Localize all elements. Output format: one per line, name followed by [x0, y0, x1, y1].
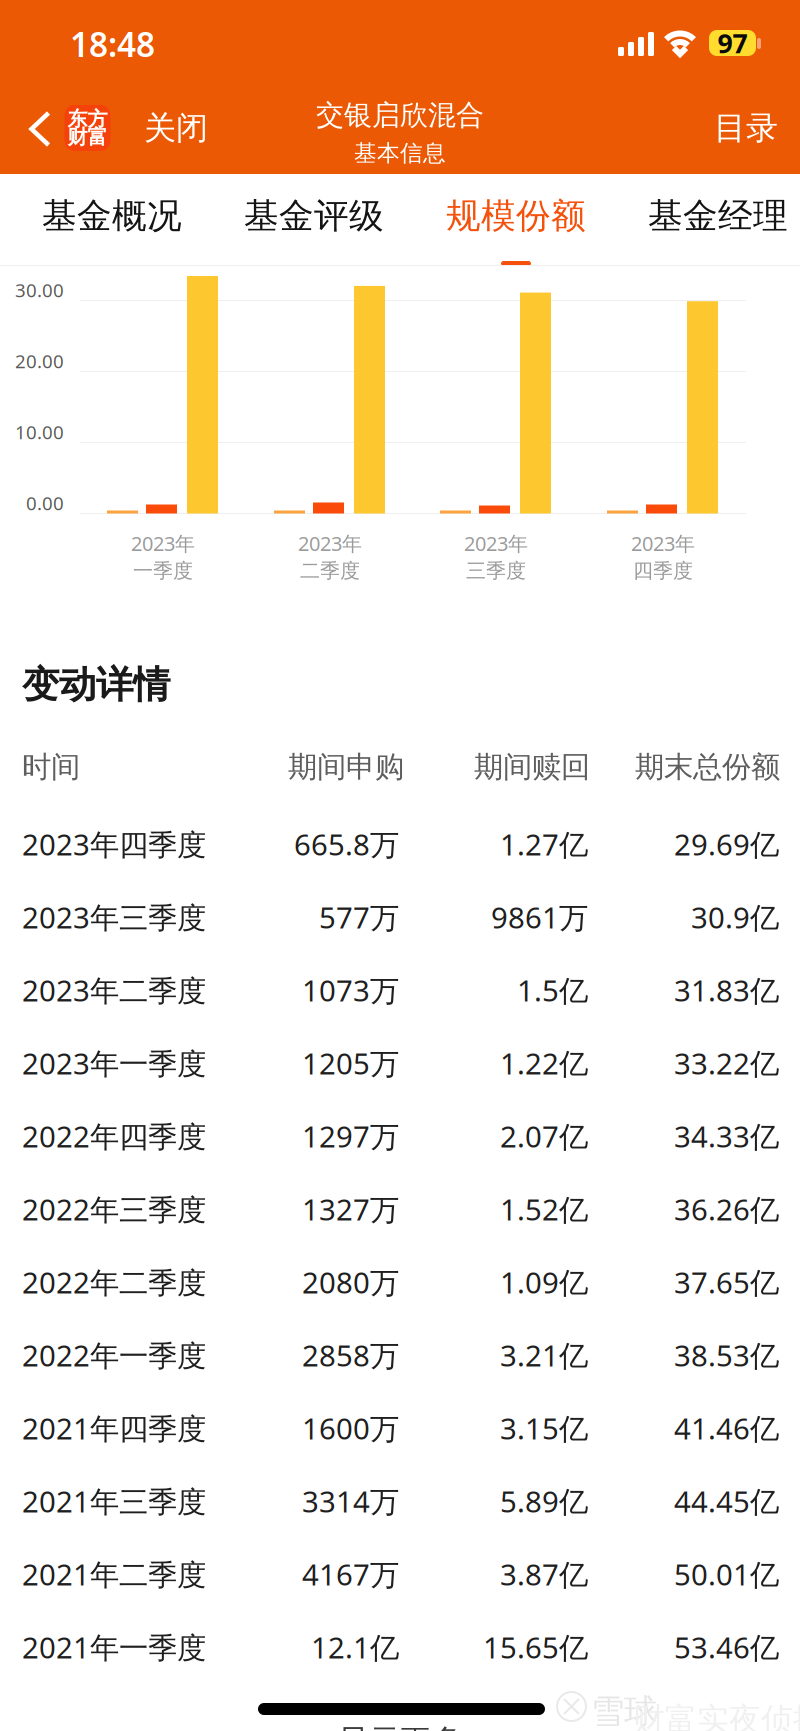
staticText: 2023年 [131, 530, 195, 557]
staticText: 变动详情 [22, 662, 170, 708]
staticText: 0.00 [26, 491, 64, 515]
staticText: 4167万 [302, 1554, 399, 1593]
staticText: 规模份额 [446, 195, 586, 237]
staticText: 2022年二季度 [22, 1262, 206, 1301]
staticText: 目录 [714, 108, 778, 148]
staticText: 四季度 [633, 559, 693, 583]
staticText: 53.46亿 [674, 1627, 779, 1666]
staticText: 显示更多 [338, 1722, 462, 1731]
staticText: 2023年 [464, 530, 528, 557]
button[interactable]: 基金经理 [627, 174, 800, 266]
staticText: 2021年二季度 [22, 1554, 206, 1593]
staticText: 36.26亿 [674, 1189, 779, 1228]
staticText: 1073万 [302, 970, 399, 1009]
staticText: 基金概况 [42, 195, 182, 237]
staticText: 交银启欣混合 [316, 98, 484, 132]
staticText: 2023年三季度 [22, 897, 206, 936]
staticText: 18:48 [70, 22, 155, 66]
staticText: 2858万 [302, 1335, 399, 1374]
staticText: 41.46亿 [674, 1408, 779, 1447]
staticText: 30.9亿 [691, 897, 779, 936]
staticText: 基金经理 [648, 195, 788, 237]
staticText: 东方 [67, 107, 107, 131]
staticText: 37.65亿 [674, 1262, 779, 1301]
staticText: 基金评级 [244, 195, 384, 237]
staticText: 期末总份额 [635, 749, 780, 785]
staticText: 1.09亿 [500, 1262, 588, 1301]
staticText: 15.65亿 [483, 1627, 588, 1666]
button[interactable]: 显示更多 [0, 1721, 800, 1731]
staticText: 1.27亿 [500, 824, 588, 863]
staticText: 时间 [22, 749, 80, 785]
staticText: 3.15亿 [500, 1408, 588, 1447]
staticText: 2023年 [631, 530, 695, 557]
staticText: 44.45亿 [674, 1481, 779, 1520]
staticText: 3.21亿 [500, 1335, 588, 1374]
staticText: 期间申购 [288, 749, 404, 785]
staticText: 财富实夜侦探07 [633, 1697, 800, 1731]
staticText: 1600万 [302, 1408, 399, 1447]
staticText: 1297万 [302, 1116, 399, 1155]
staticText: 雪球 [591, 1691, 657, 1731]
staticText: 97 [717, 25, 747, 61]
staticText: 1205万 [302, 1043, 399, 1082]
button[interactable]: 关闭 [133, 102, 219, 154]
staticText: 期间赎回 [474, 749, 590, 785]
button[interactable]: 规模份额 [425, 174, 607, 266]
staticText: 5.89亿 [500, 1481, 588, 1520]
staticText: 1.52亿 [500, 1189, 588, 1228]
staticText: 577万 [319, 897, 399, 936]
staticText: 20.00 [15, 349, 64, 373]
staticText: 基本信息 [354, 139, 446, 167]
staticText: 38.53亿 [674, 1335, 779, 1374]
staticText: 12.1亿 [311, 1627, 399, 1666]
staticText: 29.69亿 [674, 824, 779, 863]
button[interactable]: 返回 [10, 112, 95, 152]
staticText: 2021年一季度 [22, 1627, 206, 1666]
staticText: 31.83亿 [674, 970, 779, 1009]
staticText: 2022年一季度 [22, 1335, 206, 1374]
staticText: 3.87亿 [500, 1554, 588, 1593]
staticText: 1327万 [302, 1189, 399, 1228]
staticText: 2022年四季度 [22, 1116, 206, 1155]
staticText: 30.00 [15, 278, 64, 302]
staticText: 1.22亿 [500, 1043, 588, 1082]
staticText: 2022年三季度 [22, 1189, 206, 1228]
staticText: 3314万 [302, 1481, 399, 1520]
staticText: 2023年二季度 [22, 970, 206, 1009]
staticText: 33.22亿 [674, 1043, 779, 1082]
staticText: 10.00 [15, 420, 64, 444]
staticText: 2080万 [302, 1262, 399, 1301]
staticText: 2.07亿 [500, 1116, 588, 1155]
staticText: 财富 [67, 125, 107, 149]
staticText: 2023年一季度 [22, 1043, 206, 1082]
staticText: 2023年 [298, 530, 362, 557]
staticText: 三季度 [466, 559, 526, 583]
staticText: 665.8万 [294, 824, 399, 863]
staticText: 一季度 [133, 559, 193, 583]
button[interactable]: 目录 [703, 102, 789, 154]
staticText: 9861万 [491, 897, 588, 936]
staticText: 2021年三季度 [22, 1481, 206, 1520]
staticText: 2021年四季度 [22, 1408, 206, 1447]
button[interactable]: 基金评级 [223, 174, 405, 266]
staticText: 1.5亿 [517, 970, 588, 1009]
staticText: 关闭 [144, 108, 208, 148]
staticText: 2023年四季度 [22, 824, 206, 863]
button[interactable]: 基金概况 [21, 174, 203, 266]
staticText: 50.01亿 [674, 1554, 779, 1593]
staticText: 34.33亿 [674, 1116, 779, 1155]
staticText: 二季度 [300, 559, 360, 583]
